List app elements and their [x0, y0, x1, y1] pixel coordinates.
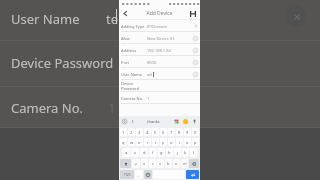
button[interactable]: y	[160, 138, 167, 146]
button[interactable]: Emoji	[182, 118, 189, 125]
button[interactable]: w	[128, 138, 135, 146]
staticText: z	[135, 161, 137, 166]
staticText: Address	[121, 48, 145, 53]
staticText: Camera No.	[11, 99, 84, 117]
button[interactable]: Device Password	[119, 80, 200, 92]
staticText: te	[106, 10, 119, 28]
staticText: h	[168, 150, 171, 155]
button[interactable]: Back	[120, 8, 131, 19]
button[interactable]: p	[192, 138, 199, 146]
button[interactable]: e	[136, 138, 143, 146]
staticText: 3	[138, 130, 141, 135]
button[interactable]: Adding Type	[119, 20, 200, 32]
button[interactable]: thanks	[147, 119, 160, 124]
staticText: y	[162, 140, 165, 145]
staticText: ,	[138, 172, 140, 177]
staticText: Adding Type	[121, 24, 145, 29]
staticText: Camera No.	[121, 96, 145, 101]
button[interactable]: I	[132, 119, 134, 124]
staticText: Alias	[121, 36, 145, 41]
staticText: 5	[154, 130, 157, 135]
button[interactable]: Save	[188, 9, 198, 19]
staticText: 9	[186, 130, 189, 135]
button[interactable]: o	[184, 138, 191, 146]
button[interactable]: Shift	[120, 159, 131, 168]
staticText: i	[179, 140, 181, 145]
staticText: 4	[146, 130, 149, 135]
staticText: v	[159, 161, 162, 166]
button[interactable]: 9	[184, 128, 191, 136]
button[interactable]: v	[157, 159, 164, 168]
button[interactable]: Address	[119, 44, 200, 56]
button[interactable]: ?123	[120, 170, 134, 179]
button[interactable]: b	[165, 159, 172, 168]
button[interactable]: 5	[152, 128, 159, 136]
staticText: 0	[194, 130, 197, 135]
staticText: u	[170, 140, 173, 145]
button[interactable]: c	[149, 159, 156, 168]
staticText: n	[175, 161, 178, 166]
button[interactable]: l	[190, 148, 197, 157]
staticText: l	[193, 150, 195, 155]
staticText: q	[122, 140, 125, 145]
staticText: e	[138, 140, 141, 145]
staticText: Device Password	[11, 54, 114, 72]
staticText: g	[160, 150, 163, 155]
button[interactable]: 6	[160, 128, 167, 136]
button[interactable]: q	[120, 138, 127, 146]
button[interactable]: n	[173, 159, 180, 168]
button[interactable]: 2	[128, 128, 135, 136]
staticText: ?123	[124, 173, 131, 177]
button[interactable]: Camera No.	[119, 92, 200, 104]
button[interactable]: r	[144, 138, 151, 146]
button[interactable]: Microphone	[191, 118, 198, 125]
button[interactable]: f	[149, 148, 157, 157]
button[interactable]: 3	[136, 128, 143, 136]
staticText: ad	[147, 72, 152, 77]
button[interactable]: 1	[120, 128, 127, 136]
button[interactable]: User Name	[119, 68, 200, 80]
button[interactable]: Alias	[119, 32, 200, 44]
staticText: User Name	[11, 10, 80, 28]
button[interactable]: 8	[176, 128, 183, 136]
button[interactable]: m	[181, 159, 188, 168]
button[interactable]: Close	[286, 6, 307, 27]
staticText: 192.168.1.64	[147, 48, 171, 53]
staticText: IP/Domain	[147, 24, 168, 29]
button[interactable]: Port	[119, 56, 200, 68]
staticText: w	[130, 140, 134, 145]
button[interactable]: g	[158, 148, 165, 157]
button[interactable]: Stickers	[173, 118, 180, 125]
button[interactable]: u	[168, 138, 175, 146]
staticText: a	[125, 150, 128, 155]
button[interactable]: d	[140, 148, 148, 157]
staticText: 2	[130, 130, 133, 135]
button[interactable]: ,	[135, 170, 143, 179]
button[interactable]: 0	[192, 128, 199, 136]
staticText: r	[147, 140, 149, 145]
staticText: s	[134, 150, 136, 155]
button[interactable]: Enter	[186, 170, 199, 179]
button[interactable]: a	[122, 148, 130, 157]
button[interactable]: t	[152, 138, 159, 146]
staticText: Port	[121, 60, 145, 65]
button[interactable]: 7	[168, 128, 175, 136]
button[interactable]: h	[166, 148, 173, 157]
button[interactable]: i	[176, 138, 183, 146]
staticText: New Device 01	[147, 36, 175, 41]
button[interactable]: Backspace	[189, 159, 199, 168]
staticText: k	[184, 150, 187, 155]
staticText: d	[143, 150, 146, 155]
button[interactable]: Emoji	[144, 170, 152, 179]
staticText: b	[167, 161, 170, 166]
button[interactable]: s	[131, 148, 139, 157]
button[interactable]: x	[141, 159, 148, 168]
button[interactable]: k	[182, 148, 189, 157]
button[interactable]: 4	[144, 128, 151, 136]
staticText: Add Device	[146, 10, 173, 17]
button[interactable]: Voice	[121, 118, 128, 125]
button[interactable]: j	[174, 148, 181, 157]
button[interactable]: z	[132, 159, 140, 168]
staticText: m	[183, 161, 187, 166]
